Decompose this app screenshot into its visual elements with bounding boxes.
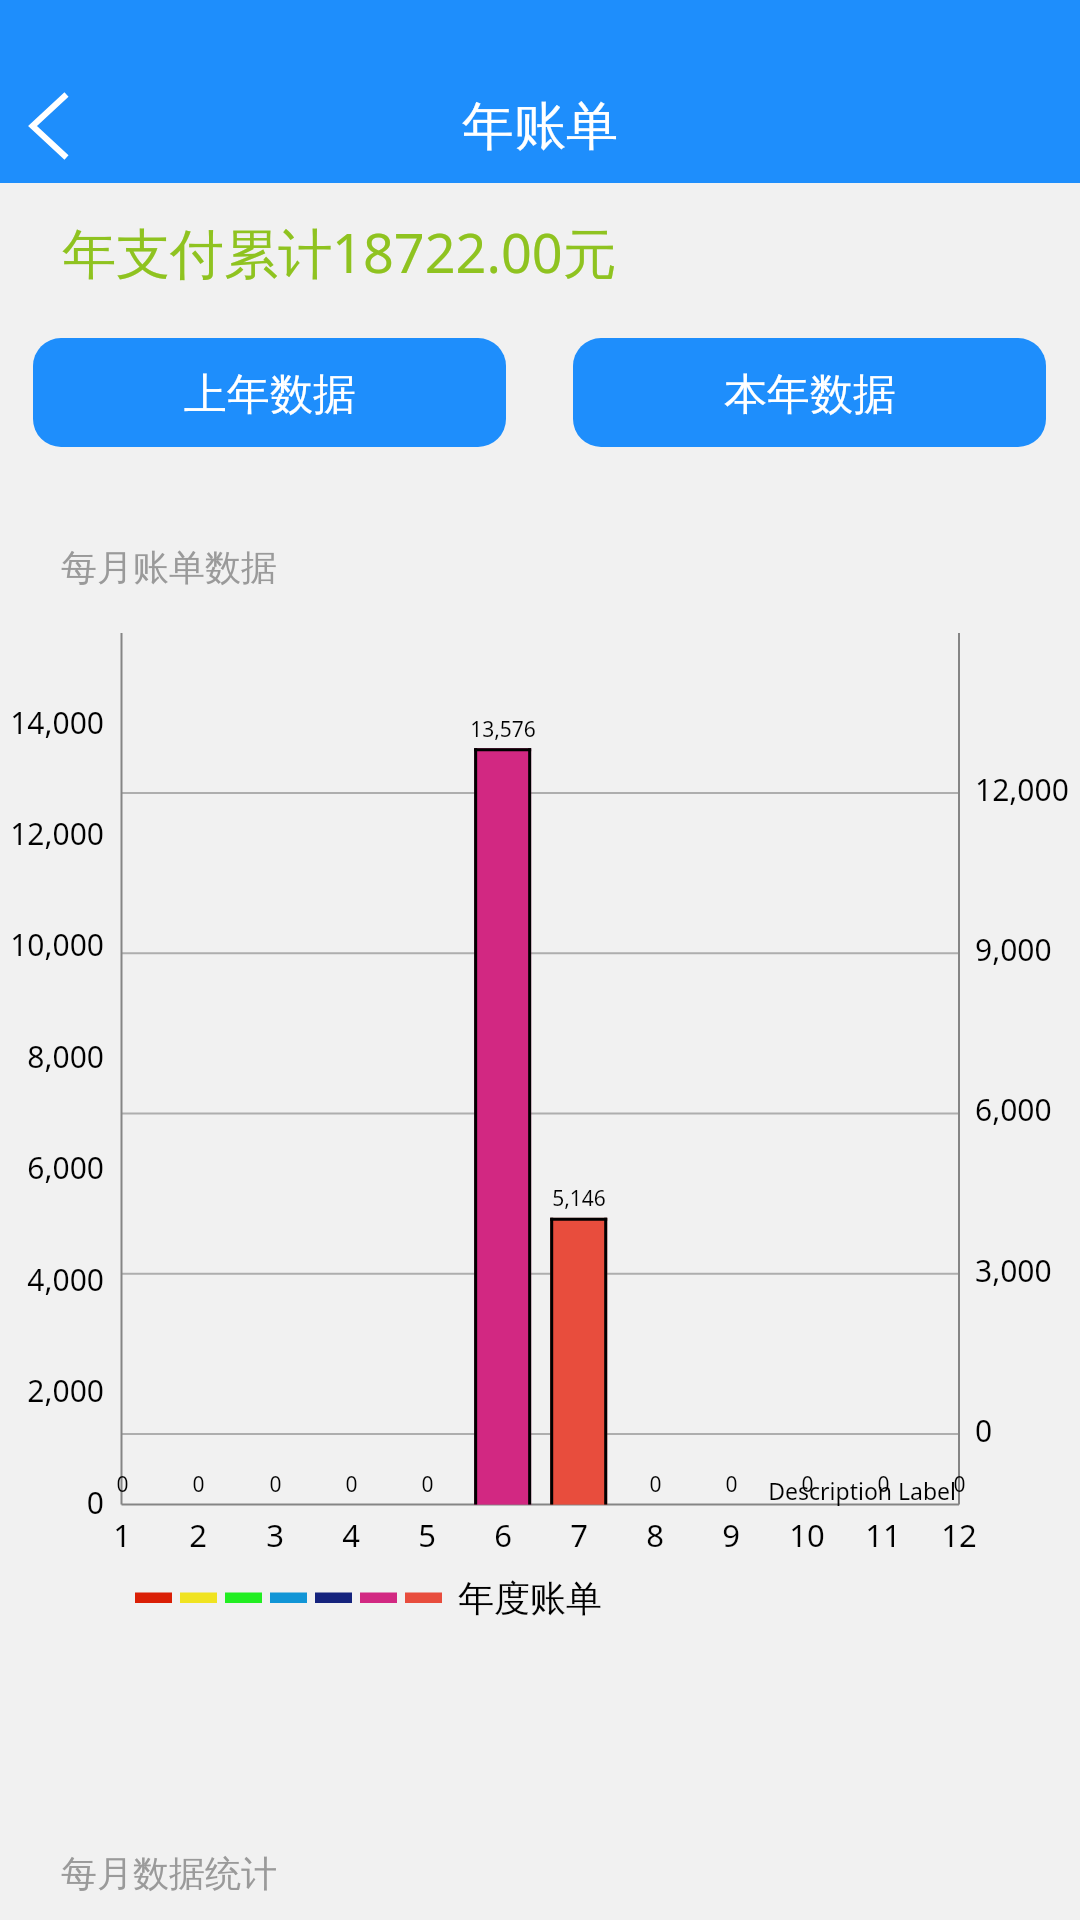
staticText: 6,000 bbox=[975, 1089, 1052, 1130]
staticText: 6,000 bbox=[27, 1147, 104, 1188]
staticText: 0 bbox=[975, 1410, 993, 1451]
staticText: 本年数据 bbox=[724, 368, 896, 422]
staticText: Description Label bbox=[768, 1475, 956, 1506]
staticText: 8,000 bbox=[27, 1036, 104, 1077]
staticText: 0 bbox=[345, 1470, 358, 1499]
staticText: 7 bbox=[570, 1514, 588, 1556]
staticText: 9 bbox=[722, 1514, 740, 1556]
staticText: 11 bbox=[865, 1514, 901, 1556]
staticText: 0 bbox=[86, 1482, 104, 1523]
staticText: 3 bbox=[266, 1514, 284, 1556]
staticText: 3,000 bbox=[975, 1250, 1052, 1291]
button[interactable]: 上年数据 bbox=[33, 338, 506, 447]
staticText: 0 bbox=[192, 1470, 205, 1499]
staticText: 13,576 bbox=[470, 715, 536, 744]
staticText: 12,000 bbox=[10, 813, 104, 854]
staticText: 0 bbox=[269, 1470, 282, 1499]
staticText: 年支付累计18722.00元 bbox=[62, 215, 617, 289]
staticText: 0 bbox=[801, 1470, 814, 1499]
staticText: 0 bbox=[725, 1470, 738, 1499]
staticText: 14,000 bbox=[10, 702, 104, 743]
staticText: 4,000 bbox=[27, 1259, 104, 1300]
staticText: 0 bbox=[953, 1470, 966, 1499]
staticText: 年账单 bbox=[462, 94, 618, 160]
button[interactable]: 本年数据 bbox=[573, 338, 1046, 447]
staticText: 1 bbox=[113, 1514, 131, 1556]
staticText: 年度账单 bbox=[458, 1576, 602, 1621]
button[interactable]: Back bbox=[9, 87, 87, 165]
staticText: 上年数据 bbox=[184, 368, 356, 422]
staticText: 5,146 bbox=[552, 1184, 606, 1213]
staticText: 0 bbox=[116, 1470, 129, 1499]
staticText: 10,000 bbox=[10, 924, 104, 965]
staticText: 12,000 bbox=[975, 769, 1069, 810]
staticText: 每月账单数据 bbox=[61, 545, 277, 590]
staticText: 10 bbox=[789, 1514, 825, 1556]
staticText: 9,000 bbox=[975, 929, 1052, 970]
staticText: 12 bbox=[941, 1514, 977, 1556]
staticText: 4 bbox=[342, 1514, 360, 1556]
staticText: 每月数据统计 bbox=[61, 1851, 277, 1896]
staticText: 8 bbox=[646, 1514, 664, 1556]
staticText: 6 bbox=[494, 1514, 512, 1556]
staticText: 0 bbox=[649, 1470, 662, 1499]
staticText: 0 bbox=[877, 1470, 890, 1499]
staticText: 0 bbox=[421, 1470, 434, 1499]
staticText: 2 bbox=[189, 1514, 207, 1556]
staticText: 2,000 bbox=[27, 1370, 104, 1411]
staticText: 5 bbox=[418, 1514, 436, 1556]
